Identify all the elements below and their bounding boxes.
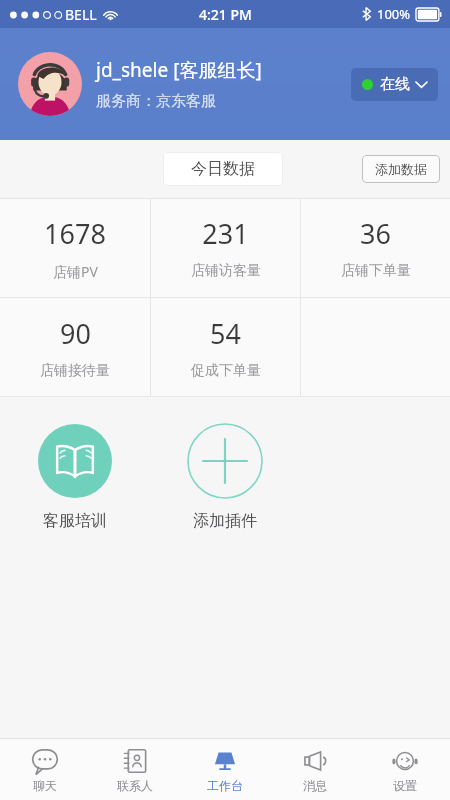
staticText: 店铺下单量 <box>341 262 411 280</box>
staticText: 服务商：京东客服 <box>96 92 216 111</box>
staticText: 今日数据 <box>191 159 255 179</box>
button[interactable]: 工作台 <box>180 739 270 800</box>
staticText: 店铺访客量 <box>191 262 261 280</box>
staticText: jd_shele [客服组长] <box>96 57 262 83</box>
staticText: 36 <box>360 215 391 252</box>
button[interactable]: 添加插件 <box>183 419 267 535</box>
staticText: 1678 <box>44 215 106 252</box>
staticText: 工作台 <box>207 778 243 793</box>
button[interactable]: 在线 <box>351 68 438 101</box>
button[interactable]: Profile avatar <box>18 52 82 116</box>
button[interactable]: 添加数据 <box>362 155 440 183</box>
staticText: 聊天 <box>33 778 57 793</box>
button[interactable]: 1678 <box>0 198 150 297</box>
button[interactable]: 消息 <box>270 739 360 800</box>
button[interactable]: 设置 <box>360 739 450 800</box>
staticText: BELL <box>65 5 97 24</box>
button[interactable]: 54 <box>151 298 300 397</box>
staticText: 4:21 PM <box>199 5 252 24</box>
staticText: 100% <box>377 5 411 23</box>
button[interactable]: 联系人 <box>90 739 180 800</box>
button[interactable]: 231 <box>151 198 300 297</box>
staticText: 联系人 <box>117 778 153 793</box>
staticText: 客服培训 <box>43 511 107 531</box>
staticText: 促成下单量 <box>191 362 261 380</box>
staticText: 消息 <box>303 778 327 793</box>
staticText: 90 <box>60 315 91 352</box>
staticText: 231 <box>202 215 249 252</box>
staticText: 设置 <box>393 778 417 793</box>
staticText: 添加数据 <box>375 161 427 177</box>
button[interactable]: 今日数据 <box>163 152 283 186</box>
button[interactable]: 客服培训 <box>33 419 117 535</box>
button[interactable]: 聊天 <box>0 739 90 800</box>
staticText: 店铺PV <box>53 262 98 281</box>
staticText: 在线 <box>380 75 410 94</box>
staticText: 54 <box>210 315 241 352</box>
button[interactable]: 90 <box>0 298 150 397</box>
staticText: 添加插件 <box>193 511 257 531</box>
button[interactable]: 36 <box>301 198 450 297</box>
staticText: 店铺接待量 <box>40 362 110 380</box>
